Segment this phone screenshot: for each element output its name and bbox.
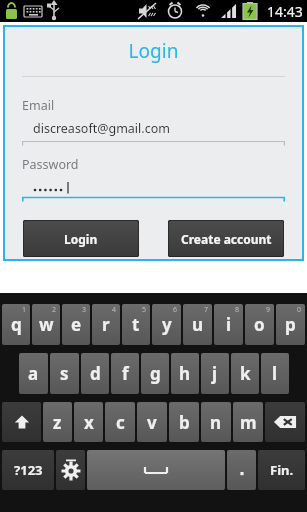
button[interactable]: i	[214, 304, 243, 345]
button[interactable]: Login	[23, 220, 139, 257]
button[interactable]: n	[201, 402, 231, 442]
button[interactable]: a	[19, 353, 48, 394]
staticText: n	[210, 411, 222, 434]
button[interactable]: Space	[87, 450, 225, 490]
button[interactable]: discreasoft@gmail.com	[22, 120, 285, 146]
button[interactable]: r	[92, 304, 120, 345]
button[interactable]: q	[2, 304, 30, 345]
button[interactable]: ?123	[2, 450, 54, 490]
staticText: i	[226, 313, 232, 336]
staticText: p	[285, 313, 296, 336]
button[interactable]: e	[62, 304, 90, 345]
staticText: z	[53, 411, 62, 434]
staticText: 0	[297, 305, 302, 315]
staticText: r	[102, 313, 110, 336]
button[interactable]: Period	[227, 450, 256, 490]
staticText: Email	[22, 97, 55, 114]
button[interactable]: Create account	[168, 220, 284, 257]
staticText: 1	[22, 305, 27, 315]
staticText: w	[39, 313, 54, 336]
button[interactable]: u	[183, 304, 212, 345]
staticText: c	[116, 411, 125, 434]
staticText: b	[179, 411, 190, 434]
staticText: ?123	[14, 461, 43, 479]
staticText: 7	[204, 305, 209, 315]
button[interactable]: p	[276, 304, 305, 345]
button[interactable]: b	[169, 402, 199, 442]
staticText: s	[60, 362, 69, 385]
button[interactable]: l	[261, 353, 289, 394]
staticText: 9	[266, 305, 271, 315]
staticText: e	[71, 313, 82, 336]
staticText: x	[84, 411, 94, 434]
button[interactable]: s	[50, 353, 79, 394]
staticText: k	[240, 362, 251, 385]
button[interactable]: x	[74, 402, 103, 442]
staticText: a	[28, 362, 39, 385]
staticText: 14:43	[267, 2, 303, 21]
staticText: Password	[22, 156, 79, 173]
button[interactable]: Shift	[2, 402, 41, 442]
staticText: Create account	[181, 231, 272, 247]
button[interactable]: y	[152, 304, 181, 345]
staticText: j	[212, 362, 218, 385]
staticText: 4	[112, 305, 117, 315]
staticText: u	[192, 313, 204, 336]
staticText: Login	[64, 231, 98, 247]
button[interactable]: z	[43, 402, 72, 442]
staticText: Login	[5, 38, 302, 64]
button[interactable]	[22, 179, 285, 202]
button[interactable]: m	[233, 402, 263, 442]
staticText: Fin.	[270, 461, 294, 479]
staticText: g	[150, 362, 161, 385]
button[interactable]: o	[245, 304, 274, 345]
button[interactable]: h	[171, 353, 199, 394]
staticText: f	[122, 362, 129, 385]
button[interactable]: v	[137, 402, 167, 442]
staticText: 8	[235, 305, 240, 315]
button[interactable]: Fin.	[258, 450, 305, 490]
button[interactable]: d	[81, 353, 109, 394]
staticText: 6	[173, 305, 178, 315]
staticText: l	[272, 362, 278, 385]
button[interactable]: Backspace	[265, 402, 305, 442]
staticText: v	[147, 411, 157, 434]
staticText: o	[254, 313, 265, 336]
staticText: 3	[82, 305, 87, 315]
button[interactable]: j	[201, 353, 229, 394]
staticText: q	[11, 313, 22, 336]
staticText: m	[240, 411, 257, 434]
staticText: discreasoft@gmail.com	[33, 120, 170, 137]
staticText: 5	[142, 305, 147, 315]
button[interactable]: g	[141, 353, 169, 394]
staticText: 2	[52, 305, 57, 315]
button[interactable]: t	[122, 304, 150, 345]
staticText: h	[179, 362, 191, 385]
staticText: y	[162, 313, 172, 336]
button[interactable]: k	[231, 353, 259, 394]
button[interactable]: Settings	[56, 450, 85, 490]
button[interactable]: c	[105, 402, 135, 442]
button[interactable]: w	[32, 304, 60, 345]
staticText: d	[90, 362, 101, 385]
staticText: t	[132, 313, 140, 336]
button[interactable]: f	[111, 353, 139, 394]
